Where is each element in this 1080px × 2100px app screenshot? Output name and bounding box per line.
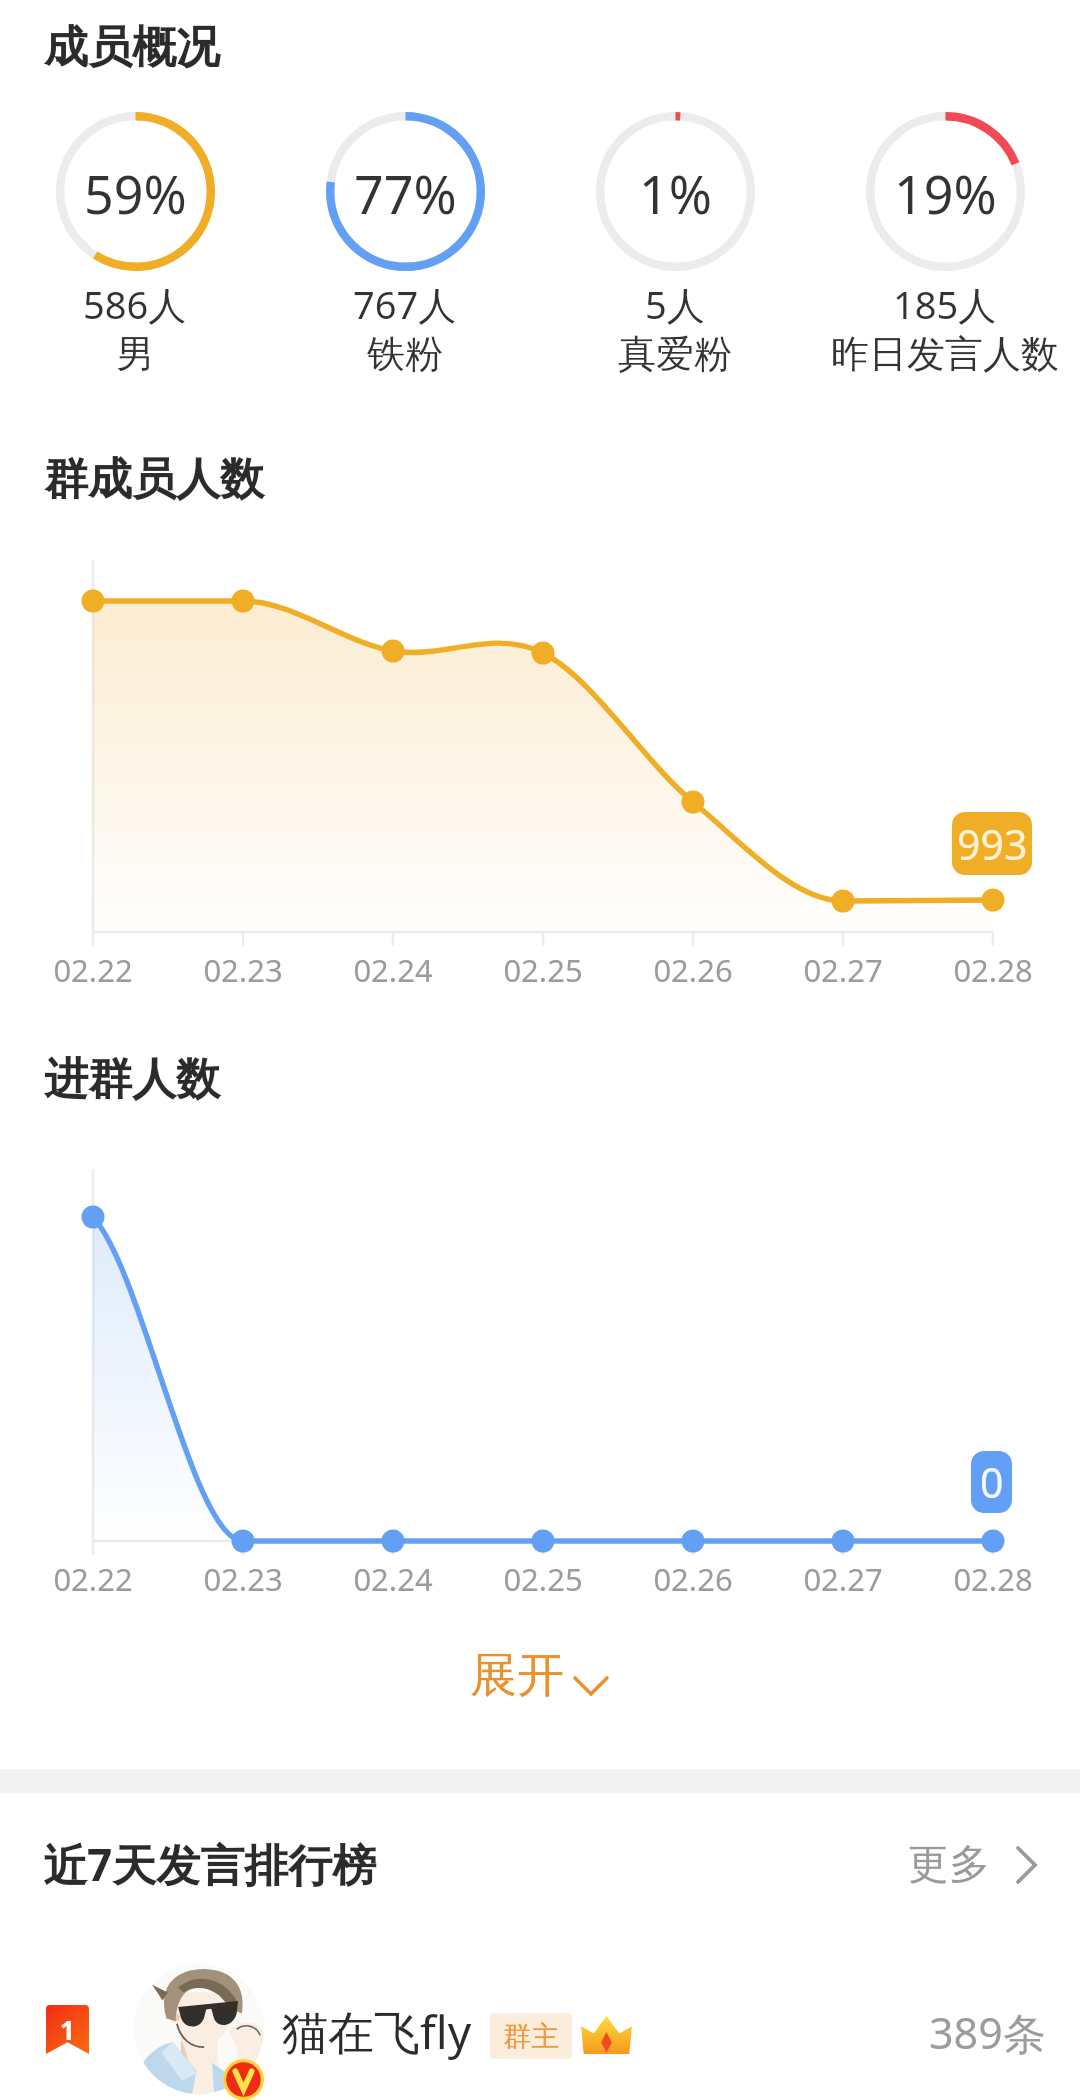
staticText: 02.23 <box>173 949 313 991</box>
staticText: 02.25 <box>473 1558 613 1600</box>
staticText: 185人 <box>893 278 997 330</box>
staticText: 1 <box>46 2012 89 2047</box>
button[interactable]: 1 <box>0 1950 1080 2100</box>
staticText: 19% <box>894 158 997 229</box>
staticText: 02.27 <box>773 1558 913 1600</box>
staticText: 767人 <box>353 278 457 330</box>
staticText: 77% <box>354 158 457 229</box>
staticText: 02.22 <box>23 1558 163 1600</box>
staticText: 群成员人数 <box>44 452 264 507</box>
staticText: 1% <box>639 158 712 229</box>
staticText: 02.28 <box>923 949 1063 991</box>
button[interactable]: 1% <box>540 112 810 378</box>
staticText: 02.23 <box>173 1558 313 1600</box>
staticText: 389条 <box>929 2003 1046 2062</box>
staticText: 993 <box>957 816 1028 872</box>
staticText: 02.24 <box>323 949 463 991</box>
staticText: 5人 <box>645 278 705 330</box>
button[interactable]: 展开 <box>470 1646 608 1705</box>
staticText: 群主 <box>503 2019 559 2054</box>
staticText: 猫在飞fly <box>282 2000 472 2063</box>
staticText: 59% <box>84 158 187 229</box>
staticText: 0 <box>980 1454 1004 1510</box>
staticText: 02.24 <box>323 1558 463 1600</box>
button[interactable]: 59% <box>0 112 270 378</box>
staticText: 男 <box>116 330 154 378</box>
staticText: 02.28 <box>923 1558 1063 1600</box>
staticText: 02.26 <box>623 1558 763 1600</box>
staticText: 真爱粉 <box>618 330 732 378</box>
button[interactable]: 19% <box>810 112 1080 378</box>
button[interactable]: 更多 <box>908 1839 1040 1891</box>
staticText: 成员概况 <box>44 20 220 75</box>
staticText: 02.27 <box>773 949 913 991</box>
staticText: 展开 <box>470 1646 564 1705</box>
button[interactable]: 77% <box>270 112 540 378</box>
staticText: 昨日发言人数 <box>831 330 1059 378</box>
staticText: 02.25 <box>473 949 613 991</box>
staticText: 进群人数 <box>44 1052 220 1107</box>
staticText: 586人 <box>83 278 187 330</box>
staticText: 更多 <box>908 1839 990 1891</box>
staticText: 铁粉 <box>367 330 443 378</box>
staticText: 近7天发言排行榜 <box>43 1834 377 1894</box>
staticText: 02.22 <box>23 949 163 991</box>
staticText: 02.26 <box>623 949 763 991</box>
